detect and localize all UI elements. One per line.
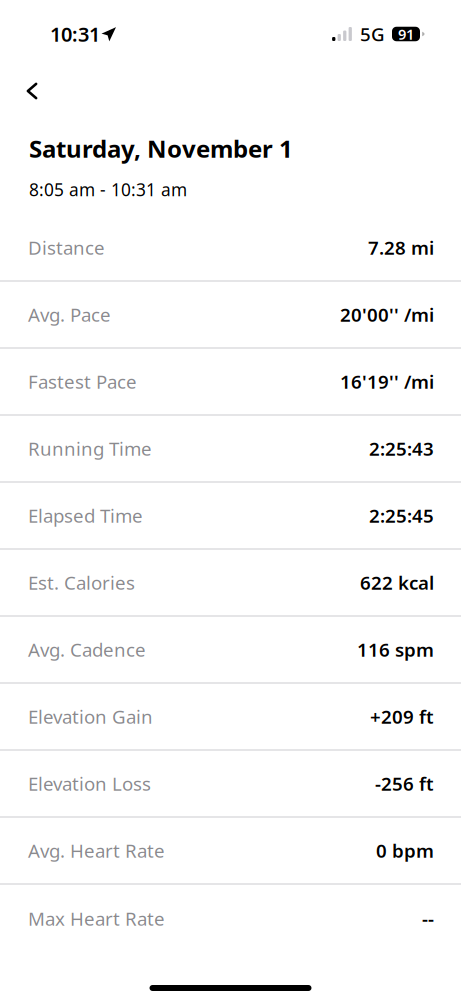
staticText: 16'19'' /mi [340, 369, 434, 394]
staticText: Avg. Cadence [28, 637, 146, 662]
button[interactable]: Avg. Heart Rate [0, 818, 461, 885]
button[interactable]: Avg. Cadence [0, 617, 461, 684]
staticText: Elevation Loss [28, 771, 151, 796]
staticText: +209 ft [370, 704, 434, 729]
staticText: 8:05 am - 10:31 am [29, 178, 187, 201]
staticText: Est. Calories [28, 570, 135, 595]
button[interactable]: Back [10, 68, 54, 114]
staticText: -256 ft [375, 771, 434, 796]
button[interactable]: Fastest Pace [0, 349, 461, 416]
staticText: 91 [398, 24, 414, 44]
staticText: Avg. Heart Rate [28, 838, 165, 863]
staticText: 116 spm [357, 637, 434, 662]
button[interactable]: Elevation Gain [0, 684, 461, 751]
staticText: Elapsed Time [28, 503, 143, 528]
staticText: 10:31 [50, 21, 100, 47]
staticText: 622 kcal [360, 570, 434, 595]
button[interactable]: Elapsed Time [0, 483, 461, 550]
button[interactable]: Distance [0, 215, 461, 282]
staticText: 5G [360, 22, 385, 46]
staticText: Fastest Pace [28, 369, 137, 394]
staticText: 2:25:45 [369, 503, 434, 528]
button[interactable]: Est. Calories [0, 550, 461, 617]
staticText: 7.28 mi [368, 235, 434, 260]
button[interactable]: Running Time [0, 416, 461, 483]
staticText: Distance [28, 235, 105, 260]
staticText: Running Time [28, 436, 152, 461]
staticText: Saturday, November 1 [29, 133, 293, 164]
staticText: Avg. Pace [28, 302, 111, 327]
staticText: Max Heart Rate [28, 906, 165, 931]
button[interactable]: Max Heart Rate [0, 885, 461, 952]
button[interactable]: Elevation Loss [0, 751, 461, 818]
staticText: 0 bpm [376, 838, 434, 863]
staticText: 20'00'' /mi [340, 302, 434, 327]
staticText: Elevation Gain [28, 704, 153, 729]
staticText: 2:25:43 [369, 436, 434, 461]
staticText: -- [422, 906, 434, 931]
button[interactable]: Avg. Pace [0, 282, 461, 349]
